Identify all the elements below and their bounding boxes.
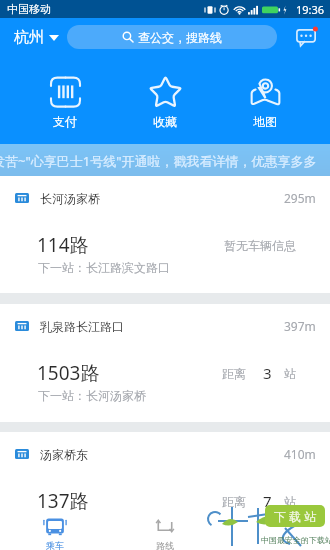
staticText: 114路 (37, 232, 89, 258)
staticText: 397m (284, 318, 316, 334)
staticText: 295m (284, 190, 316, 206)
button[interactable]: 查公交，搜路线 (67, 25, 277, 49)
staticText: 137路 (37, 488, 89, 514)
staticText: 中国最安全的下载站 (261, 535, 330, 545)
staticText: 查公交，搜路线 (138, 30, 222, 45)
staticText: 路线 (156, 540, 174, 550)
button[interactable]: 支付 (15, 56, 115, 144)
staticText: 乘车 (46, 540, 64, 550)
staticText: 乳泉路长江路口 (40, 319, 124, 334)
staticText: 19:36 (296, 2, 325, 17)
staticText: 杭州 (14, 28, 44, 47)
button[interactable]: 乘车 (0, 510, 110, 550)
staticText: 汤家桥东 (40, 447, 88, 462)
staticText: 中国移动 (7, 2, 51, 16)
staticText: 下一站： (38, 516, 86, 531)
staticText: 地图 (253, 114, 277, 129)
button[interactable]: 杭州 (8, 22, 61, 53)
staticText: 支付 (53, 114, 77, 129)
button[interactable]: Messages (294, 24, 320, 50)
staticText: 下一站：长河汤家桥 (38, 388, 146, 403)
staticText: 1503路 (37, 360, 100, 386)
button[interactable]: 收藏 (115, 56, 215, 144)
staticText: 距离 (222, 494, 246, 509)
staticText: 7 (263, 491, 272, 511)
staticText: 410m (284, 446, 316, 462)
button[interactable]: 乳泉路长江路口 (0, 304, 330, 422)
button[interactable]: 地图 (215, 56, 315, 144)
staticText: 下一站：长江路滨文路口 (38, 260, 170, 275)
staticText: 暂无车辆信息 (224, 238, 296, 253)
staticText: 站 (284, 494, 296, 509)
staticText: 下 载 站 (274, 508, 317, 524)
staticText: 长河汤家桥 (40, 191, 100, 206)
button[interactable]: 发苦~"心享巴士1号线"开通啦，戳我看详情，优惠享多多 (0, 144, 330, 176)
button[interactable]: 路线 (110, 510, 220, 550)
staticText: 站 (284, 366, 296, 381)
button[interactable]: 汤家桥东 (0, 432, 330, 550)
staticText: 收藏 (153, 114, 177, 129)
staticText: 3 (263, 363, 272, 383)
button[interactable]: 长河汤家桥 (0, 176, 330, 293)
staticText: 发苦~"心享巴士1号线"开通啦，戳我看详情，优惠享多多 (0, 152, 317, 170)
staticText: 距离 (222, 366, 246, 381)
